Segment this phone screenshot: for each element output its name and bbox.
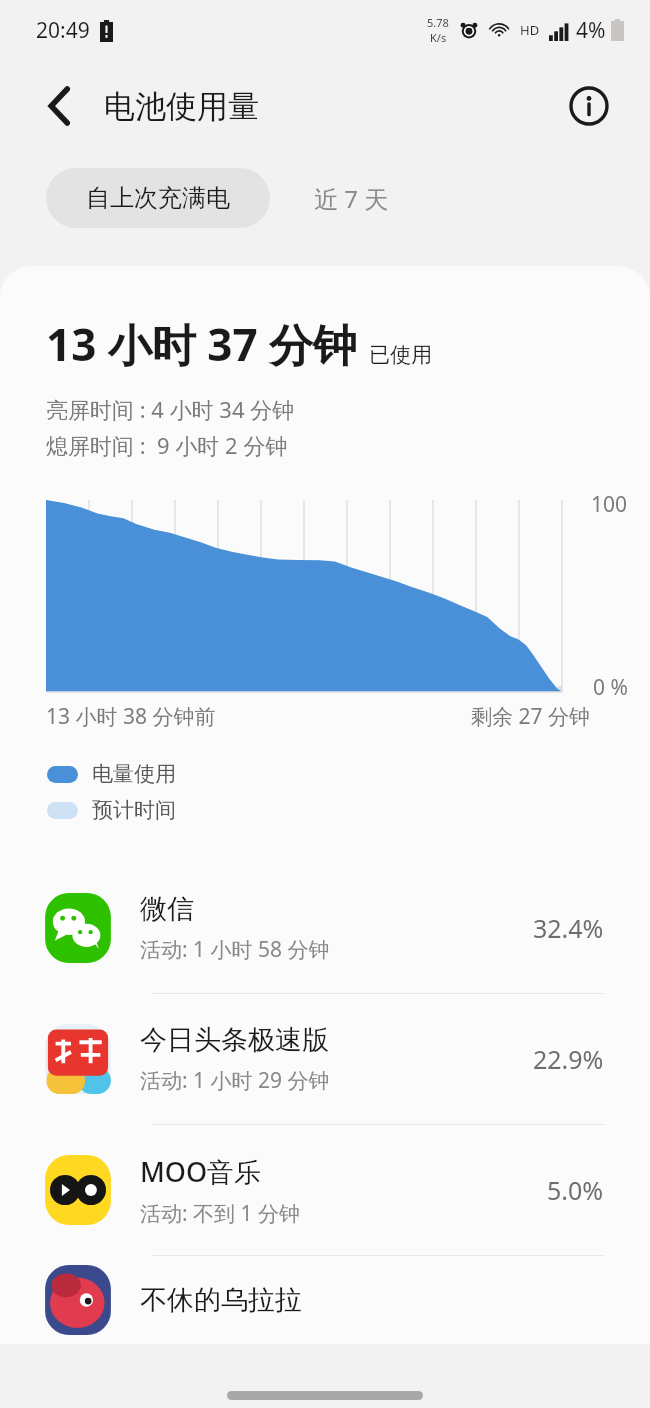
staticText: HD — [520, 21, 540, 39]
staticText: 13 小时 37 分钟 — [46, 314, 357, 374]
button[interactable]: 微信 — [0, 863, 650, 993]
staticText: 电池使用量 — [104, 87, 259, 126]
staticText: 0 % — [593, 673, 628, 702]
staticText: 5.78 — [427, 15, 449, 30]
staticText: 已使用 — [369, 342, 432, 368]
staticText: 熄屏时间 : 9 小时 2 分钟 — [46, 430, 288, 460]
button[interactable]: Back — [30, 76, 90, 136]
staticText: 不休的乌拉拉 — [140, 1283, 302, 1317]
staticText: 100 — [591, 490, 628, 519]
staticText: 预计时间 — [92, 797, 176, 823]
staticText: 电量使用 — [92, 761, 176, 787]
staticText: 微信 — [140, 892, 194, 926]
staticText: MOO音乐 — [140, 1153, 262, 1190]
staticText: K/s — [430, 30, 447, 45]
button[interactable]: Information — [560, 77, 618, 135]
staticText: 近 7 天 — [314, 182, 389, 215]
staticText: 活动: 1 小时 58 分钟 — [140, 935, 330, 964]
button[interactable]: 不休的乌拉拉 — [0, 1256, 650, 1344]
button[interactable]: 今日头条极速版 — [0, 994, 650, 1124]
staticText: 剩余 27 分钟 — [471, 702, 590, 731]
staticText: 20:49 — [36, 16, 90, 45]
staticText: 今日头条极速版 — [140, 1023, 329, 1057]
staticText: 4% — [576, 16, 606, 45]
button[interactable]: 近 7 天 — [270, 167, 433, 230]
staticText: 32.4% — [533, 911, 604, 945]
staticText: 自上次充满电 — [86, 183, 230, 213]
staticText: 22.9% — [533, 1042, 604, 1076]
staticText: 5.0% — [547, 1173, 604, 1207]
staticText: 13 小时 38 分钟前 — [46, 702, 216, 731]
staticText: 活动: 1 小时 29 分钟 — [140, 1066, 330, 1095]
staticText: 亮屏时间 : 4 小时 34 分钟 — [46, 394, 295, 424]
staticText: 活动: 不到 1 分钟 — [140, 1199, 301, 1228]
button[interactable]: 自上次充满电 — [46, 168, 270, 228]
button[interactable]: MOO音乐 — [0, 1125, 650, 1255]
